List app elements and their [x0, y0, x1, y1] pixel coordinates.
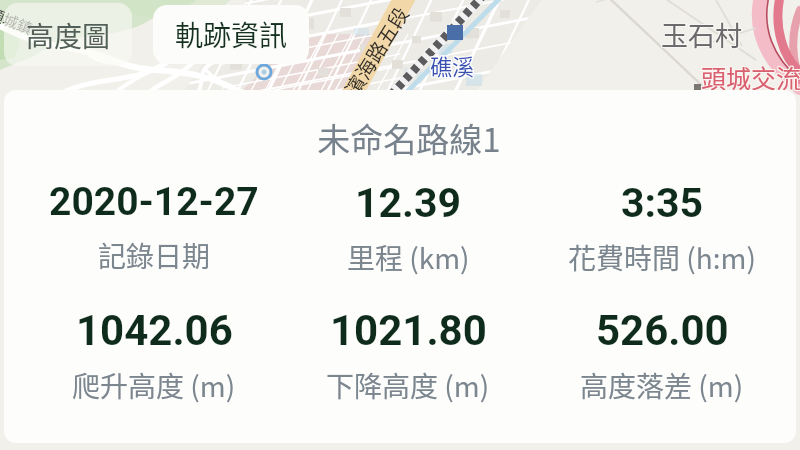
- staticText: 12.39: [355, 179, 461, 227]
- staticText: 頭城交流道: [702, 60, 800, 96]
- staticText: 未命名路線1: [13, 114, 796, 162]
- staticText: 花費時間 (h:m): [568, 237, 756, 278]
- staticText: 玉石村: [661, 15, 742, 54]
- staticText: 濱海路五段: [337, 1, 415, 101]
- staticText: 玉石村: [660, 14, 741, 53]
- staticText: 記錄日期: [98, 235, 211, 276]
- staticText: 礁溪: [429, 50, 474, 82]
- staticText: 頭城交流道: [702, 58, 800, 94]
- staticText: 里程 (km): [347, 237, 470, 278]
- staticText: 頭城交流道: [702, 59, 800, 95]
- staticText: 礁溪: [430, 49, 475, 81]
- staticText: 礁溪: [429, 49, 474, 81]
- staticText: 礁溪: [429, 48, 474, 80]
- staticText: 礁溪: [431, 48, 476, 80]
- staticText: 高度圖: [26, 15, 111, 56]
- button[interactable]: 高度圖: [4, 3, 132, 66]
- staticText: 頭城交流道: [701, 59, 800, 95]
- button[interactable]: 軌跡資訊: [153, 5, 309, 64]
- staticText: 1042.06: [76, 306, 233, 355]
- staticText: 玉石村: [662, 15, 743, 54]
- staticText: 玉石村: [660, 15, 741, 54]
- staticText: 玉石村: [661, 14, 742, 53]
- staticText: 頭城交流道: [701, 58, 800, 94]
- staticText: 玉石村: [661, 16, 742, 55]
- staticText: 頭城交流道: [700, 59, 800, 95]
- staticText: 頭城鎮: [0, 2, 37, 40]
- staticText: 頭城交流道: [701, 60, 800, 96]
- staticText: 軌跡資訊: [175, 14, 288, 55]
- staticText: 3:35: [621, 179, 704, 227]
- staticText: 526.00: [596, 306, 729, 355]
- staticText: 礁溪: [431, 49, 476, 81]
- staticText: 玉石村: [660, 16, 741, 55]
- staticText: 高度落差 (m): [580, 365, 744, 406]
- staticText: 2020-12-27: [49, 179, 259, 225]
- staticText: 頭城交流道: [700, 60, 800, 96]
- staticText: 玉石村: [662, 16, 743, 55]
- staticText: 礁溪: [431, 50, 476, 82]
- staticText: 頭城交流道: [700, 58, 800, 94]
- staticText: 玉石村: [662, 14, 743, 53]
- staticText: 礁溪: [430, 48, 475, 80]
- staticText: 1021.80: [330, 306, 487, 355]
- staticText: 下降高度 (m): [326, 365, 490, 406]
- staticText: 礁溪: [430, 50, 475, 82]
- staticText: 爬升高度 (m): [72, 365, 236, 406]
